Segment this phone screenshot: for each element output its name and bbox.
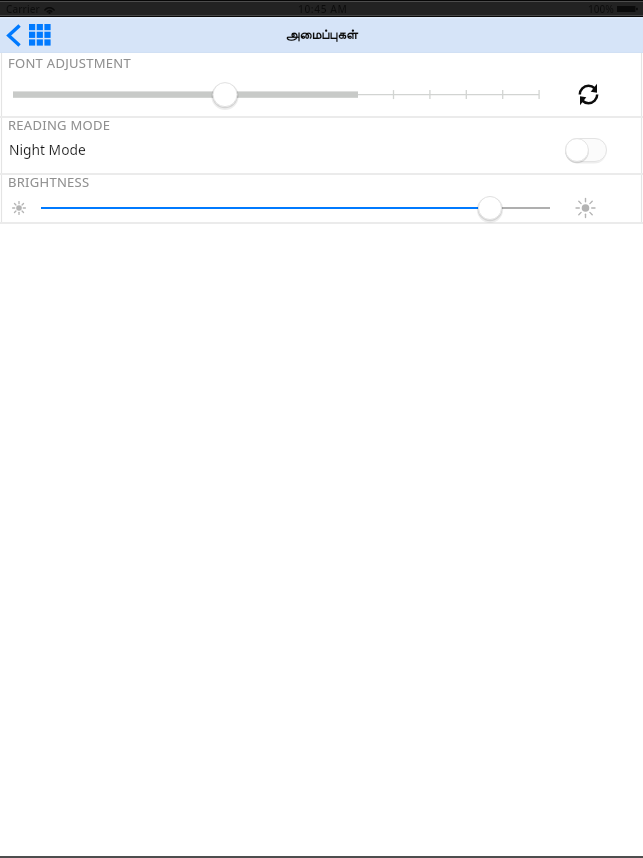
button[interactable]: Font size xyxy=(0,78,643,112)
button[interactable]: Night Mode xyxy=(565,138,607,162)
staticText: 10:45 AM xyxy=(298,2,348,16)
button[interactable]: Back xyxy=(0,17,26,53)
button[interactable]: App grid xyxy=(26,17,53,53)
button[interactable]: BRIGHTNESS xyxy=(8,173,90,191)
staticText: READING MODE xyxy=(8,116,111,134)
button[interactable]: FONT ADJUSTMENT xyxy=(8,54,131,72)
staticText: BRIGHTNESS xyxy=(8,173,90,191)
button[interactable]: Reset font size xyxy=(576,82,601,107)
button[interactable]: Night Mode xyxy=(0,132,643,172)
staticText: FONT ADJUSTMENT xyxy=(8,54,131,72)
button[interactable]: Brightness xyxy=(0,191,643,221)
staticText: Carrier xyxy=(6,2,40,16)
button[interactable]: READING MODE xyxy=(8,116,111,134)
staticText: Night Mode xyxy=(9,140,86,159)
staticText: அமைப்புகள் xyxy=(285,28,358,42)
staticText: 100% xyxy=(588,2,614,16)
